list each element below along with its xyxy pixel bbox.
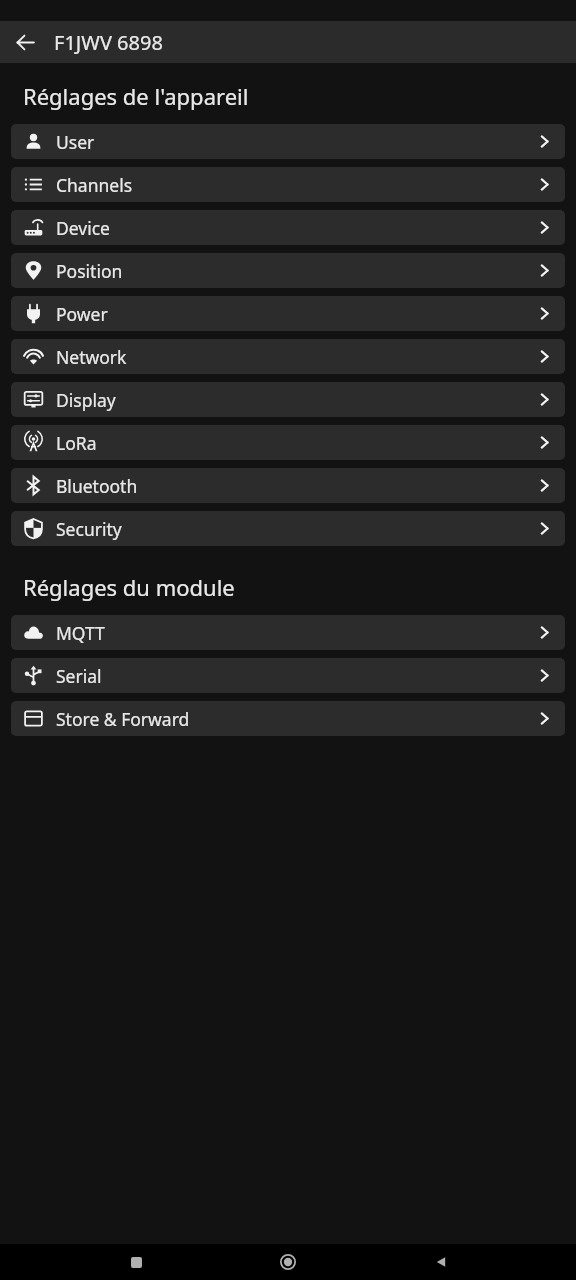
button[interactable]: Device <box>11 210 565 245</box>
button[interactable]: Position <box>11 253 565 288</box>
staticText: Position <box>56 259 536 283</box>
staticText: Device <box>56 216 536 240</box>
button[interactable]: Channels <box>11 167 565 202</box>
staticText: MQTT <box>56 621 536 645</box>
button[interactable]: Bluetooth <box>11 468 565 503</box>
staticText: Security <box>56 517 536 541</box>
staticText: Serial <box>56 664 536 688</box>
button[interactable]: Network <box>11 339 565 374</box>
button[interactable]: Display <box>11 382 565 417</box>
staticText: Network <box>56 345 536 369</box>
staticText: User <box>56 130 536 154</box>
button[interactable]: LoRa <box>11 425 565 460</box>
staticText: Store & Forward <box>56 707 536 731</box>
staticText: LoRa <box>56 431 536 455</box>
staticText: Réglages de l'appareil <box>23 81 249 111</box>
button[interactable]: Security <box>11 511 565 546</box>
button[interactable]: User <box>11 124 565 159</box>
staticText: Power <box>56 302 536 326</box>
button[interactable]: Serial <box>11 658 565 693</box>
staticText: Réglages du module <box>23 572 235 602</box>
button[interactable]: Power <box>11 296 565 331</box>
button[interactable]: Recents <box>119 1245 153 1279</box>
button[interactable]: Back <box>9 26 42 59</box>
staticText: Bluetooth <box>56 474 536 498</box>
staticText: F1JWV 6898 <box>54 29 163 56</box>
button[interactable]: Store & Forward <box>11 701 565 736</box>
button[interactable]: MQTT <box>11 615 565 650</box>
button[interactable]: Back <box>424 1245 458 1279</box>
staticText: Display <box>56 388 536 412</box>
button[interactable]: Home <box>271 1245 305 1279</box>
staticText: Channels <box>56 173 536 197</box>
